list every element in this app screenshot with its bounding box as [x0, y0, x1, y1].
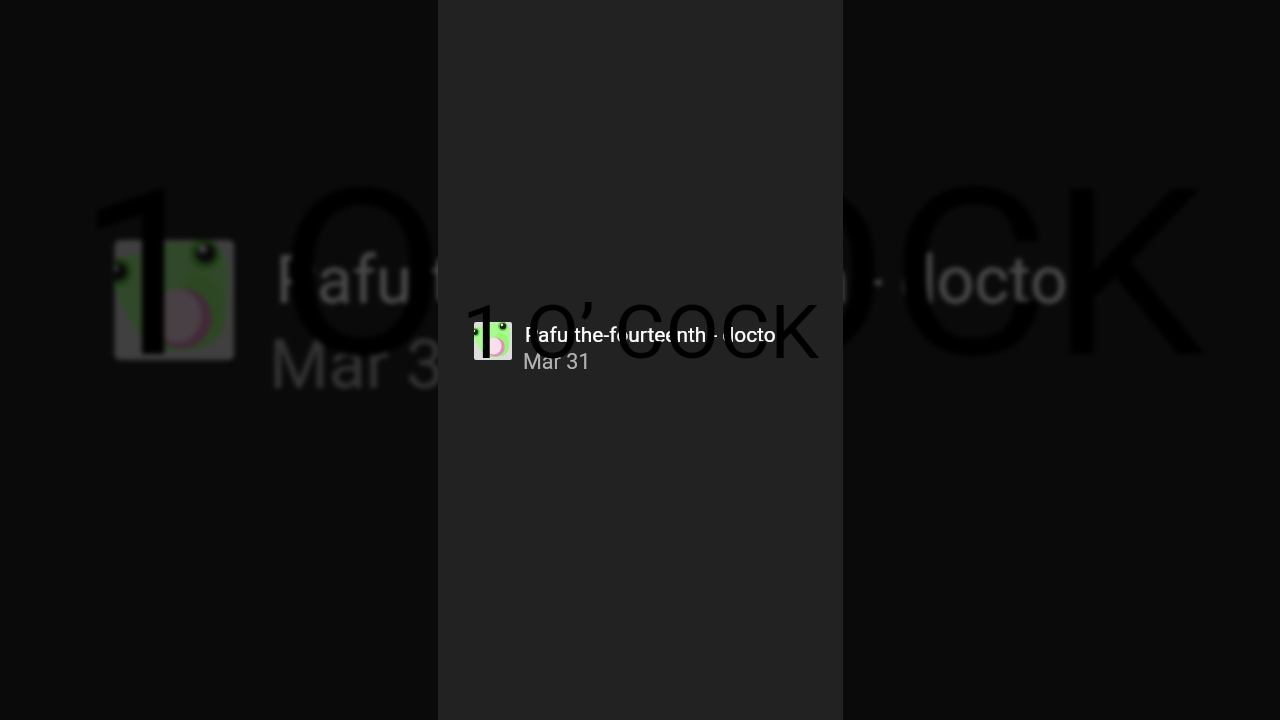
staticText: 1 O’ COCK [76, 139, 1207, 411]
button[interactable]: Pafu-the-fourteenth artwork [438, 312, 843, 370]
staticText: Pafu-the-fourteenth - docto [525, 323, 776, 347]
staticText: 1 O’ COCK [462, 290, 820, 376]
staticText: Mar 31 [269, 325, 484, 404]
staticText: Pafu-the-fourteenth - docto [275, 243, 1069, 319]
staticText: Mar 31 [523, 349, 591, 374]
other: Pafu-the-fourteenth artwork [474, 322, 512, 360]
